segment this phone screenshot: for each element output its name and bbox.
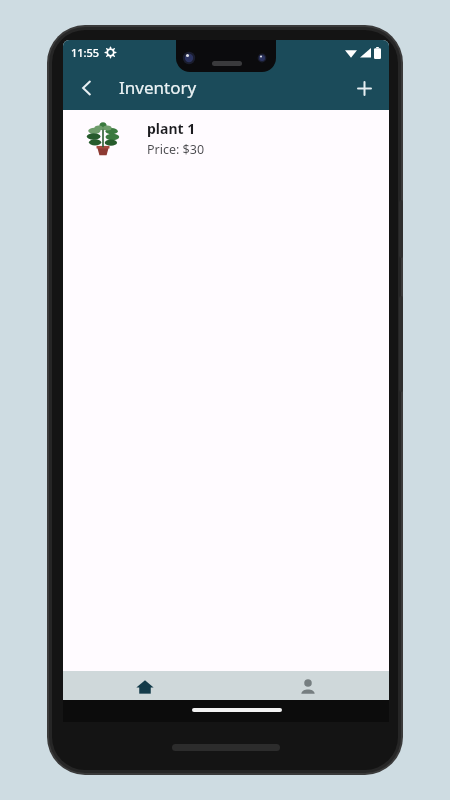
button[interactable]: Profile: [226, 671, 389, 720]
button[interactable]: Inventory: [63, 671, 226, 720]
button[interactable]: plant 1: [63, 110, 389, 166]
button[interactable]: Back: [67, 68, 107, 108]
staticText: Inventory: [119, 76, 197, 99]
staticText: plant 1: [147, 119, 196, 138]
staticText: Price: $30: [147, 141, 205, 158]
staticText: 11:55: [71, 45, 100, 60]
button[interactable]: Add item: [344, 68, 384, 108]
